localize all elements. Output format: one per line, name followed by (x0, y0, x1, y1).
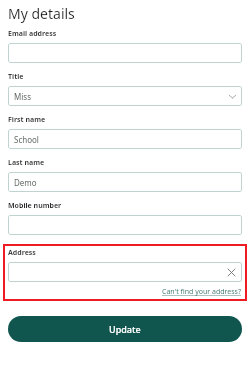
button[interactable]: School (8, 129, 242, 149)
button[interactable]: Clear address (226, 267, 237, 278)
button[interactable] (8, 43, 242, 63)
staticText: First name (8, 115, 46, 125)
staticText: Address (8, 248, 36, 258)
staticText: Email address (8, 29, 57, 39)
button[interactable]: Update (8, 316, 242, 342)
staticText: My details (8, 4, 75, 23)
staticText: Last name (8, 158, 45, 168)
button[interactable] (8, 215, 242, 235)
staticText: Can't find your address? (162, 287, 242, 297)
staticText: Title (8, 72, 24, 82)
button[interactable]: Can't find your address? (162, 287, 242, 297)
staticText: Mobile number (8, 201, 62, 211)
staticText: Demo (14, 177, 237, 188)
staticText: Update (109, 323, 141, 335)
staticText: School (14, 134, 237, 145)
button[interactable]: Miss (8, 86, 242, 106)
button[interactable]: Demo (8, 172, 242, 192)
other: Open title options (228, 92, 237, 101)
button[interactable]: Clear address (8, 262, 242, 282)
staticText: Miss (14, 91, 228, 102)
